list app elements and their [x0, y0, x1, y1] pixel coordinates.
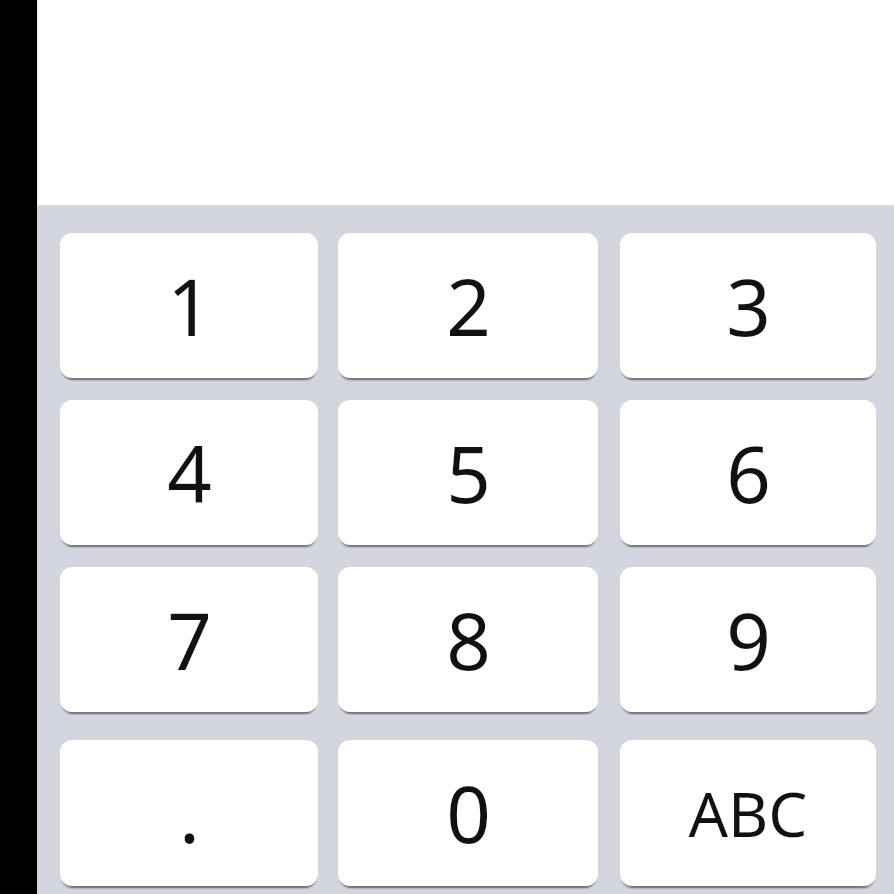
button[interactable]: .: [60, 740, 318, 886]
button[interactable]: 1: [60, 233, 318, 378]
staticText: 1: [167, 253, 212, 359]
button[interactable]: 7: [60, 567, 318, 712]
staticText: 7: [167, 587, 212, 693]
button[interactable]: ABC: [620, 740, 876, 886]
staticText: 9: [726, 587, 771, 693]
button[interactable]: 0: [338, 740, 598, 886]
button[interactable]: 8: [338, 567, 598, 712]
button[interactable]: 4: [60, 400, 318, 545]
staticText: 4: [167, 420, 212, 526]
staticText: 5: [446, 420, 491, 526]
button[interactable]: 6: [620, 400, 876, 545]
staticText: 8: [446, 587, 491, 693]
button[interactable]: 2: [338, 233, 598, 378]
button[interactable]: 9: [620, 567, 876, 712]
button[interactable]: 5: [338, 400, 598, 545]
staticText: 3: [726, 253, 771, 359]
button[interactable]: 3: [620, 233, 876, 378]
staticText: ABC: [688, 771, 808, 855]
staticText: 6: [726, 420, 771, 526]
staticText: 0: [446, 760, 491, 866]
staticText: 2: [446, 253, 491, 359]
staticText: .: [179, 760, 200, 866]
